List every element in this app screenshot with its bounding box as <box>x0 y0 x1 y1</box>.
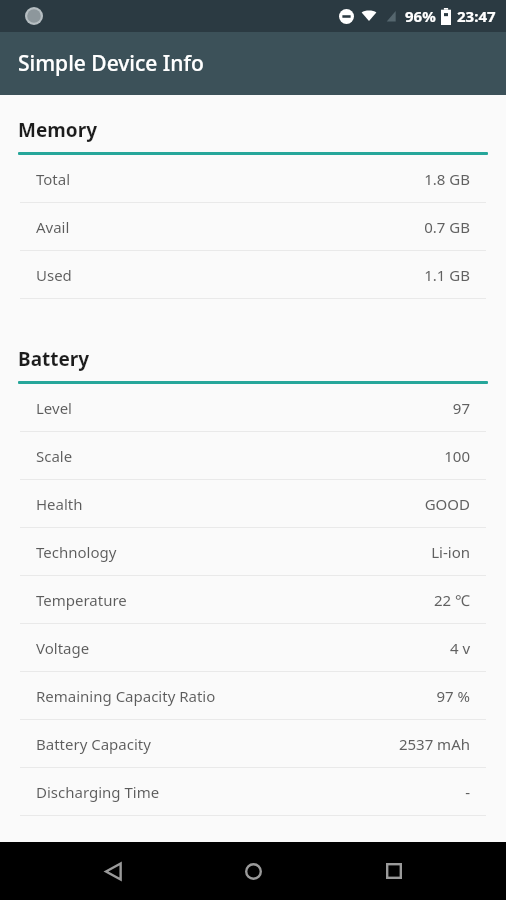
staticText: GOOD <box>424 494 470 514</box>
button[interactable]: Battery Capacity <box>0 720 506 768</box>
button[interactable]: Health <box>0 480 506 528</box>
button[interactable]: Avail <box>0 203 506 251</box>
staticText: Memory <box>18 117 98 143</box>
staticText: Avail <box>36 217 70 237</box>
staticText: 1.8 GB <box>424 169 470 189</box>
button[interactable]: Discharging Time <box>0 768 506 816</box>
staticText: Battery Capacity <box>36 734 151 754</box>
staticText: Technology <box>36 542 117 562</box>
staticText: 97 % <box>436 686 470 706</box>
button[interactable]: Scale <box>0 432 506 480</box>
staticText: Battery <box>18 346 90 372</box>
staticText: 22 ℃ <box>434 590 470 610</box>
staticText: Simple Device Info <box>18 49 204 78</box>
button[interactable]: Recent apps <box>366 843 422 899</box>
staticText: - <box>465 782 470 802</box>
staticText: 2537 mAh <box>398 734 470 754</box>
button[interactable]: Remaining Capacity Ratio <box>0 672 506 720</box>
staticText: 100 <box>444 446 470 466</box>
staticText: Remaining Capacity Ratio <box>36 686 216 706</box>
staticText: 1.1 GB <box>424 265 470 285</box>
button[interactable]: Temperature <box>0 576 506 624</box>
staticText: Total <box>36 169 71 189</box>
staticText: 4 v <box>449 638 470 658</box>
staticText: 23:47 <box>457 6 496 26</box>
staticText: 97 <box>452 398 470 418</box>
button[interactable]: Home <box>225 843 281 899</box>
staticText: Li-ion <box>431 542 470 562</box>
staticText: 0.7 GB <box>424 217 470 237</box>
staticText: Level <box>36 398 72 418</box>
button[interactable]: Total <box>0 155 506 203</box>
button[interactable]: Back <box>85 843 141 899</box>
staticText: Health <box>36 494 83 514</box>
button[interactable]: Level <box>0 384 506 432</box>
staticText: Temperature <box>36 590 127 610</box>
staticText: Used <box>36 265 72 285</box>
button[interactable]: Voltage <box>0 624 506 672</box>
button[interactable]: Technology <box>0 528 506 576</box>
staticText: Discharging Time <box>36 782 160 802</box>
button[interactable]: Used <box>0 251 506 299</box>
staticText: Voltage <box>36 638 90 658</box>
staticText: Scale <box>36 446 73 466</box>
staticText: 96% <box>405 6 436 26</box>
